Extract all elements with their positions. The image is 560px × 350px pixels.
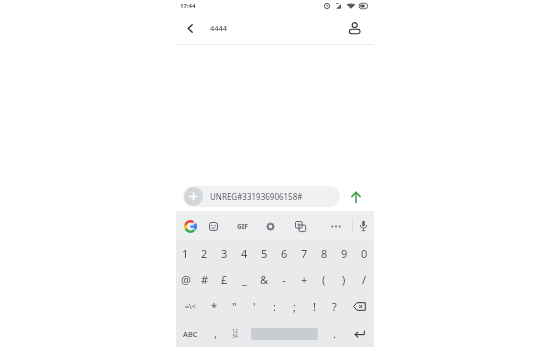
staticText: : bbox=[273, 299, 276, 314]
staticText: 6 bbox=[281, 246, 288, 261]
staticText: 12 34 bbox=[232, 328, 238, 339]
button[interactable]: ? bbox=[324, 293, 344, 320]
staticText: . bbox=[333, 326, 336, 341]
button[interactable]: 9 bbox=[334, 240, 354, 266]
button[interactable]: 7 bbox=[294, 240, 314, 266]
button[interactable]: + bbox=[294, 266, 314, 293]
button[interactable]: - bbox=[274, 266, 294, 293]
button[interactable]: & bbox=[254, 266, 274, 293]
button[interactable]: 2 bbox=[195, 240, 214, 266]
button[interactable]: : bbox=[264, 293, 284, 320]
button[interactable]: 6 bbox=[274, 240, 294, 266]
button[interactable] bbox=[176, 14, 204, 42]
staticText: # bbox=[201, 272, 209, 287]
staticText: ! bbox=[313, 299, 316, 314]
button[interactable]: , bbox=[205, 320, 225, 347]
button[interactable] bbox=[344, 293, 374, 320]
staticText: - bbox=[282, 272, 286, 287]
staticText: _ bbox=[242, 272, 247, 287]
button[interactable]: ) bbox=[334, 266, 354, 293]
button[interactable]: 8 bbox=[314, 240, 334, 266]
staticText: 7 bbox=[301, 246, 308, 261]
button[interactable] bbox=[184, 187, 203, 206]
button[interactable]: ! bbox=[304, 293, 324, 320]
staticText: " bbox=[232, 299, 237, 314]
button[interactable]: ' bbox=[244, 293, 264, 320]
staticText: 17:44 bbox=[180, 2, 196, 10]
button[interactable]: 0 bbox=[354, 240, 374, 266]
staticText: 4 bbox=[241, 246, 248, 261]
staticText: ABC bbox=[183, 329, 198, 339]
button[interactable]: 12 34 bbox=[225, 320, 245, 347]
button[interactable] bbox=[326, 216, 346, 236]
staticText: ( bbox=[322, 272, 326, 287]
button[interactable] bbox=[349, 190, 363, 204]
staticText: UNREG#331936906158# bbox=[210, 191, 303, 202]
button[interactable]: " bbox=[224, 293, 244, 320]
staticText: 0 bbox=[361, 246, 368, 261]
button[interactable]: ; bbox=[284, 293, 304, 320]
button[interactable] bbox=[290, 216, 310, 236]
button[interactable]: GIF bbox=[232, 216, 252, 236]
button[interactable]: @ bbox=[176, 266, 195, 293]
button[interactable] bbox=[203, 216, 223, 236]
button[interactable]: ( bbox=[314, 266, 334, 293]
button[interactable] bbox=[339, 13, 369, 43]
button[interactable] bbox=[260, 216, 280, 236]
staticText: =\< bbox=[185, 302, 196, 312]
button[interactable]: / bbox=[354, 266, 374, 293]
staticText: 1 bbox=[182, 246, 189, 261]
button[interactable]: * bbox=[205, 293, 224, 320]
staticText: £ bbox=[221, 272, 228, 287]
button[interactable] bbox=[344, 320, 374, 347]
button[interactable] bbox=[353, 216, 373, 236]
button[interactable] bbox=[245, 320, 324, 347]
button[interactable]: . bbox=[324, 320, 344, 347]
button[interactable]: =\< bbox=[176, 293, 205, 320]
button[interactable]: 1 bbox=[176, 240, 195, 266]
button[interactable]: £ bbox=[214, 266, 234, 293]
staticText: 3 bbox=[221, 246, 228, 261]
button[interactable]: UNREG#331936906158# bbox=[183, 186, 340, 207]
staticText: ? bbox=[332, 299, 337, 314]
staticText: & bbox=[260, 272, 269, 287]
button[interactable]: # bbox=[195, 266, 214, 293]
staticText: 4444 bbox=[210, 23, 228, 33]
staticText: , bbox=[214, 326, 217, 341]
button[interactable] bbox=[179, 215, 201, 237]
button[interactable]: 4 bbox=[234, 240, 254, 266]
staticText: 5 bbox=[261, 246, 268, 261]
button[interactable]: 5 bbox=[254, 240, 274, 266]
staticText: * bbox=[211, 299, 218, 314]
staticText: + bbox=[301, 272, 308, 287]
button[interactable]: _ bbox=[234, 266, 254, 293]
staticText: @ bbox=[181, 272, 191, 287]
button[interactable]: ABC bbox=[176, 320, 205, 347]
staticText: 2 bbox=[201, 246, 208, 261]
staticText: ' bbox=[253, 299, 256, 314]
staticText: ) bbox=[342, 272, 346, 287]
staticText: ; bbox=[293, 299, 296, 314]
staticText: 8 bbox=[321, 246, 328, 261]
staticText: GIF bbox=[237, 222, 248, 231]
staticText: / bbox=[362, 272, 367, 287]
staticText: 9 bbox=[341, 246, 348, 261]
button[interactable]: 3 bbox=[214, 240, 234, 266]
